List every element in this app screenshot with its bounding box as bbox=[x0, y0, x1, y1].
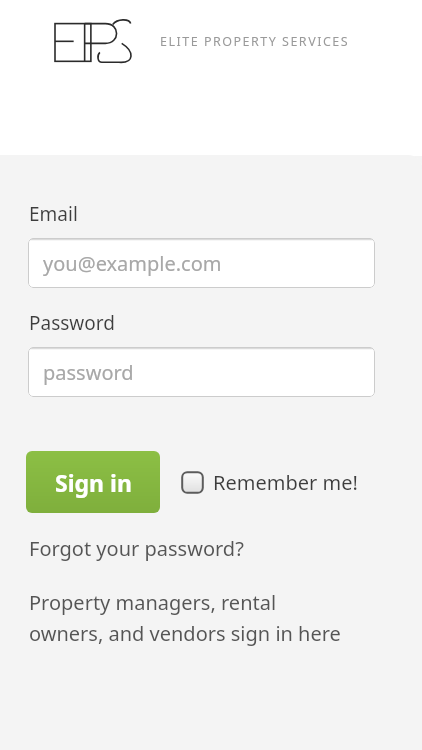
other: Remember me checkbox bbox=[181, 471, 204, 494]
button[interactable]: Email input bbox=[28, 238, 375, 288]
button[interactable]: Password input bbox=[28, 347, 375, 397]
staticText: Email bbox=[29, 201, 78, 227]
button[interactable]: Sign in bbox=[26, 451, 160, 513]
staticText: Sign in bbox=[55, 467, 132, 498]
button[interactable]: Property managers, rental owners, and ve… bbox=[29, 589, 347, 646]
button[interactable]: Remember me checkbox bbox=[181, 469, 358, 496]
staticText: password bbox=[43, 359, 134, 386]
staticText: ELITE PROPERTY SERVICES bbox=[160, 33, 350, 50]
staticText: you@example.com bbox=[43, 250, 222, 277]
staticText: Remember me! bbox=[213, 469, 358, 496]
other: Elite Property Services logo bbox=[55, 19, 133, 65]
staticText: Password bbox=[29, 310, 115, 336]
button[interactable]: Forgot your password? bbox=[29, 535, 244, 562]
staticText: Property managers, rental owners, and ve… bbox=[29, 589, 347, 646]
staticText: Forgot your password? bbox=[29, 535, 244, 562]
